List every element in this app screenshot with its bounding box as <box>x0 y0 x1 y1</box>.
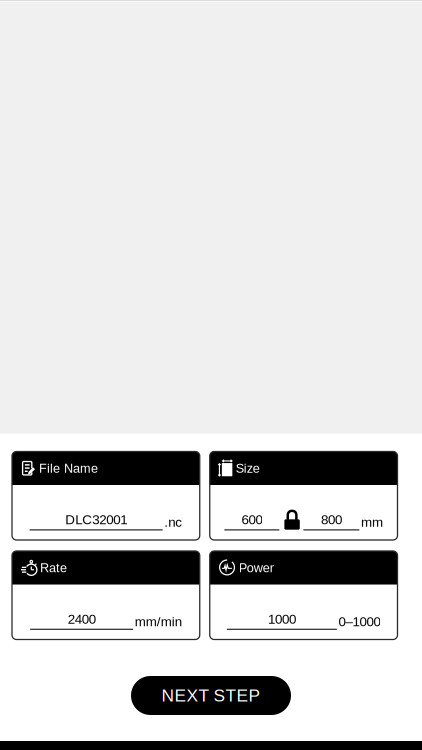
staticText: mm <box>361 515 383 529</box>
staticText: 800 <box>321 512 342 527</box>
staticText: mm/min <box>135 614 182 629</box>
staticText: 600 <box>241 512 262 527</box>
button[interactable]: File Name <box>12 451 200 540</box>
staticText: Power <box>239 561 274 575</box>
staticText: NEXT STEP <box>161 686 260 705</box>
staticText: Size <box>236 461 260 475</box>
staticText: File Name <box>39 461 98 475</box>
staticText: DLC32001 <box>65 512 127 527</box>
button[interactable]: Size <box>210 451 398 540</box>
staticText: 0–1000 <box>338 614 380 629</box>
staticText: 2400 <box>68 612 96 627</box>
staticText: 1000 <box>268 612 296 627</box>
staticText: Rate <box>40 561 67 575</box>
button[interactable]: NEXT STEP <box>131 676 291 715</box>
staticText: .nc <box>164 515 182 529</box>
button[interactable]: Rate <box>12 551 200 639</box>
button[interactable]: Power <box>210 551 398 639</box>
